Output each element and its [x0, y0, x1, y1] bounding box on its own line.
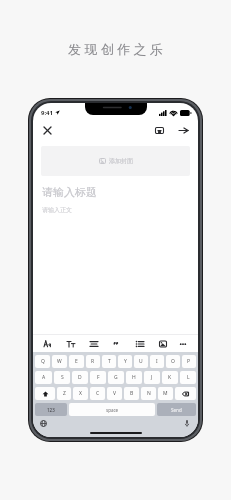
button[interactable]: K	[162, 371, 178, 384]
button[interactable]: Text style	[42, 338, 53, 349]
button[interactable]: P	[182, 355, 196, 368]
staticText: C	[96, 390, 100, 397]
button[interactable]: Save draft	[152, 123, 166, 137]
button[interactable]: Backspace	[175, 387, 196, 400]
button[interactable]: J	[144, 371, 160, 384]
staticText: 请输入正文	[42, 206, 72, 214]
button[interactable]: M	[158, 387, 173, 400]
staticText: X	[79, 390, 82, 397]
button[interactable]: O	[166, 355, 180, 368]
staticText: T	[108, 358, 111, 365]
staticText: I	[156, 358, 158, 365]
button[interactable]: T	[102, 355, 116, 368]
staticText: R	[91, 358, 95, 365]
button[interactable]: 123	[35, 403, 67, 416]
staticText: Q	[41, 358, 45, 365]
button[interactable]: F	[90, 371, 106, 384]
button[interactable]: Bullet list	[134, 338, 145, 349]
button[interactable]: Change keyboard	[38, 418, 49, 429]
button[interactable]: H	[126, 371, 142, 384]
button[interactable]: I	[150, 355, 164, 368]
staticText: L	[187, 374, 190, 381]
button[interactable]: Send	[157, 403, 196, 416]
button[interactable]: C	[90, 387, 105, 400]
staticText: B	[130, 390, 134, 397]
button[interactable]: 添加封面	[41, 146, 190, 176]
button[interactable]: L	[180, 371, 196, 384]
staticText: 发 现 创 作 之 乐	[68, 40, 163, 58]
button[interactable]: V	[107, 387, 122, 400]
button[interactable]: R	[86, 355, 100, 368]
staticText: D	[78, 374, 82, 381]
button[interactable]: More	[180, 338, 186, 349]
button[interactable]: Q	[35, 355, 50, 368]
staticText: E	[75, 358, 78, 365]
staticText: A	[42, 374, 46, 381]
button[interactable]: Insert image	[157, 338, 168, 349]
button[interactable]: space	[69, 403, 155, 416]
button[interactable]: X	[73, 387, 88, 400]
button[interactable]: Font size	[65, 338, 76, 349]
button[interactable]: Next	[176, 123, 190, 137]
staticText: 请输入标题	[42, 185, 97, 199]
button[interactable]: Voice input	[181, 418, 192, 429]
staticText: V	[113, 390, 117, 397]
staticText: 添加封面	[109, 157, 133, 165]
button[interactable]: Alignment	[88, 338, 99, 349]
staticText: H	[132, 374, 136, 381]
staticText: Y	[124, 358, 127, 365]
button[interactable]: W	[52, 355, 67, 368]
button[interactable]: Z	[57, 387, 71, 400]
staticText: F	[97, 374, 100, 381]
button[interactable]: A	[35, 371, 52, 384]
staticText: N	[147, 390, 151, 397]
button[interactable]: G	[108, 371, 124, 384]
staticText: G	[114, 374, 118, 381]
staticText: 9:41	[41, 109, 53, 117]
staticText: P	[187, 358, 191, 365]
button[interactable]: D	[72, 371, 88, 384]
staticText: K	[168, 374, 172, 381]
button[interactable]: B	[124, 387, 139, 400]
staticText: U	[139, 358, 143, 365]
button[interactable]: Shift	[35, 387, 55, 400]
staticText: M	[163, 390, 168, 397]
button[interactable]: N	[141, 387, 156, 400]
button[interactable]: U	[134, 355, 148, 368]
staticText: W	[57, 358, 62, 365]
staticText: Send	[171, 407, 182, 413]
staticText: 123	[47, 407, 55, 413]
staticText: space	[106, 407, 119, 413]
button[interactable]: Close	[41, 124, 54, 137]
button[interactable]: Y	[118, 355, 132, 368]
staticText: O	[171, 358, 175, 365]
staticText: J	[151, 374, 153, 381]
button[interactable]: S	[54, 371, 70, 384]
button[interactable]: Quote	[111, 338, 122, 349]
staticText: S	[61, 374, 64, 381]
button[interactable]: E	[69, 355, 84, 368]
staticText: Z	[63, 390, 66, 397]
